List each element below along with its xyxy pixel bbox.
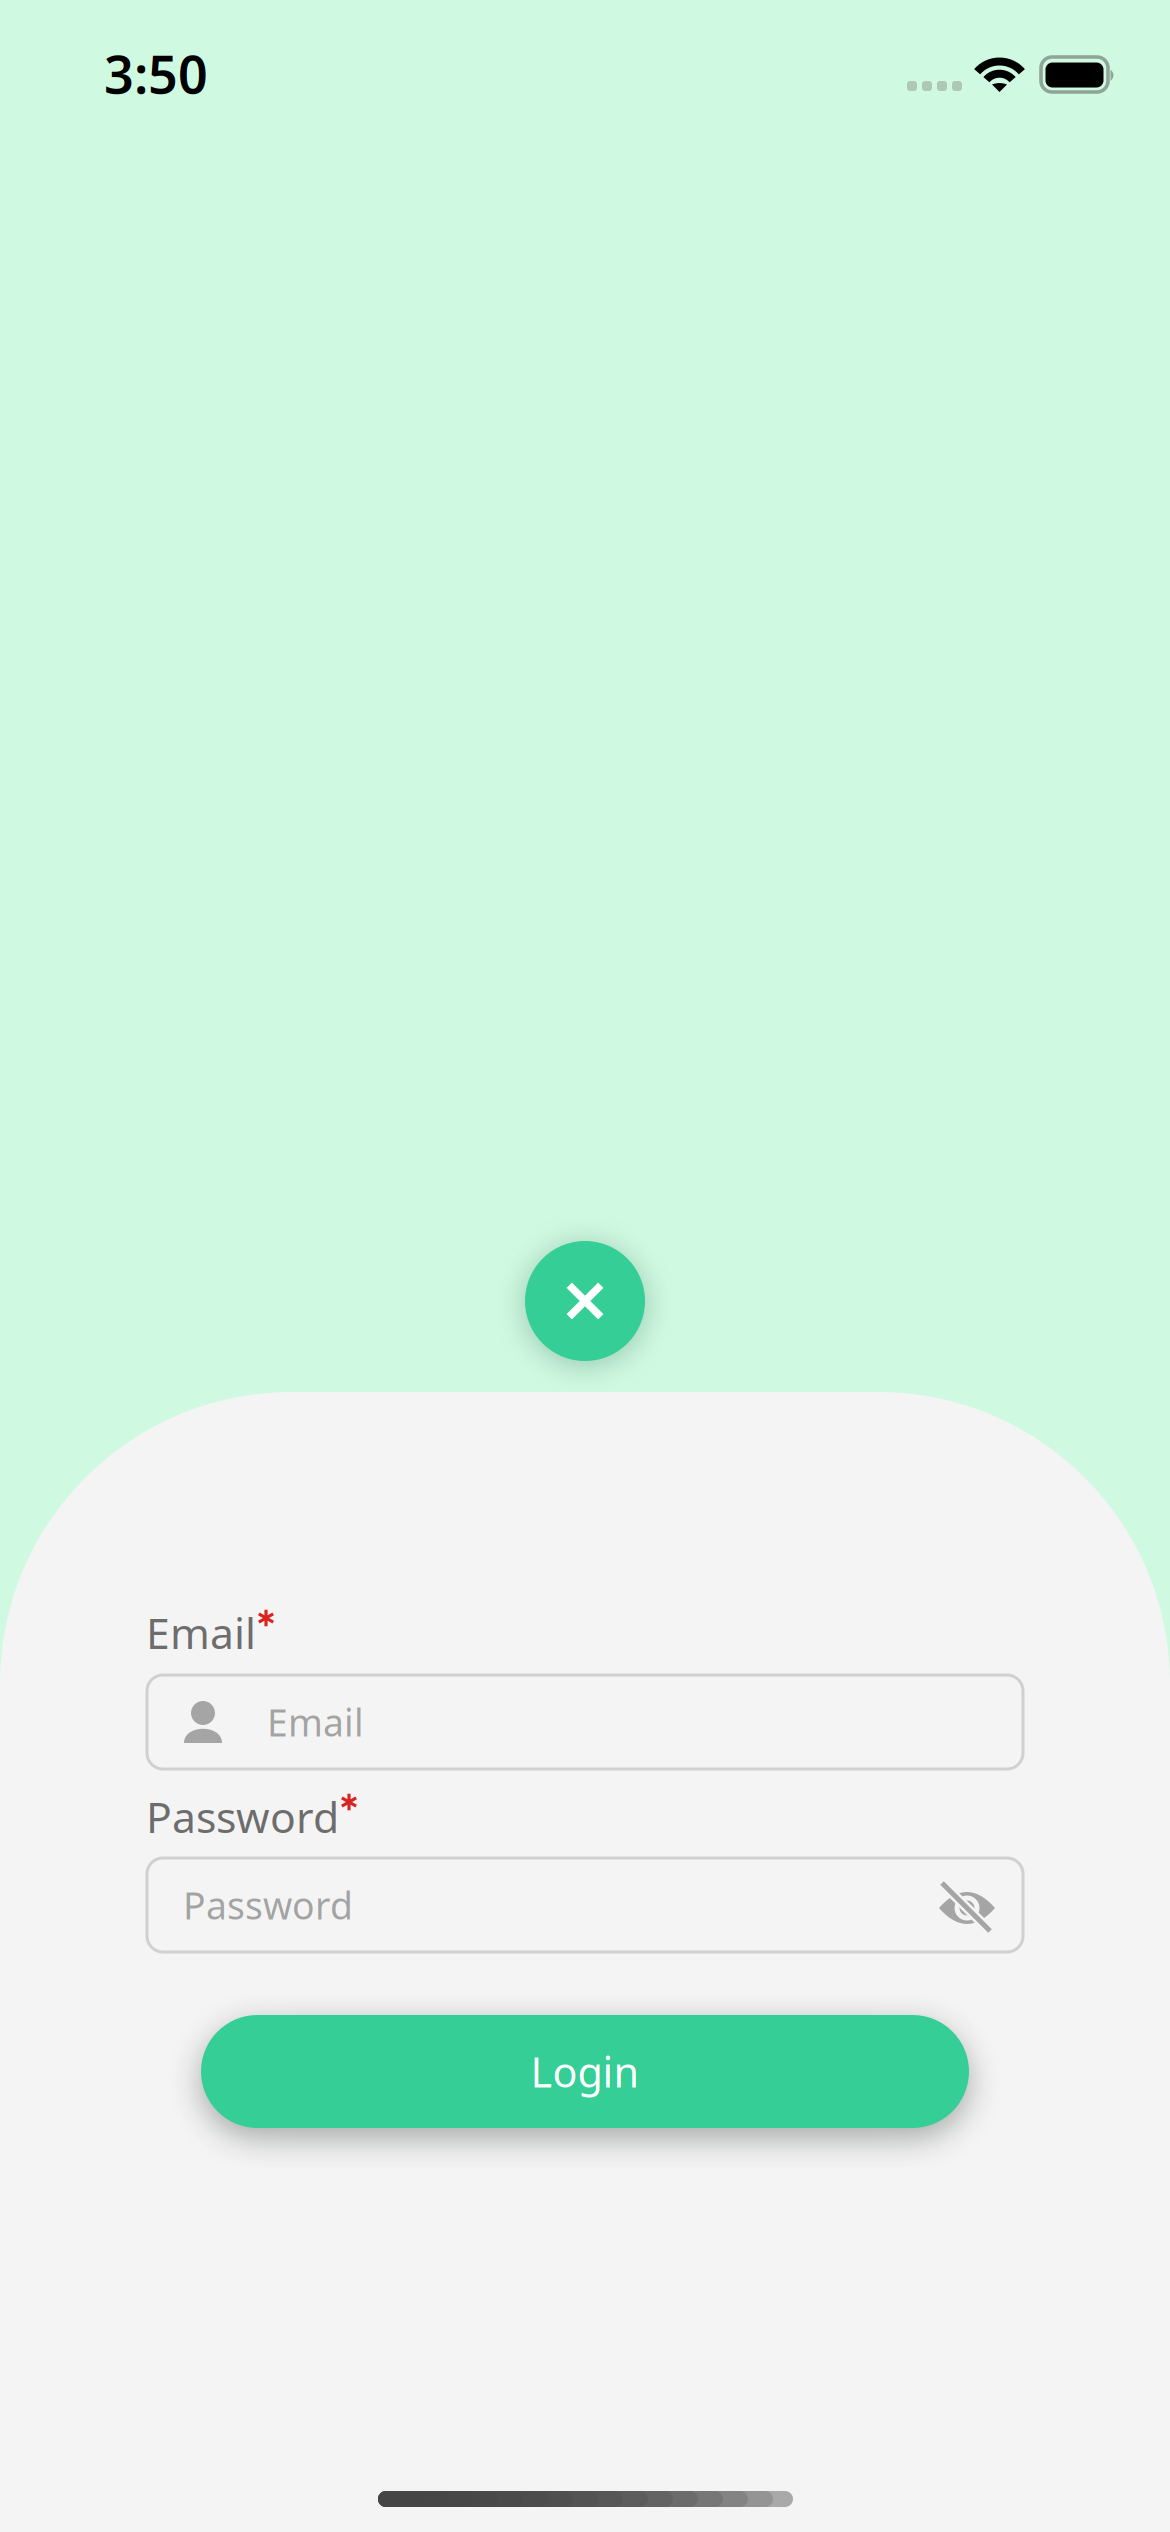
staticText: Login [530, 2044, 639, 2099]
staticText: Email [267, 1697, 364, 1747]
button[interactable]: Show password [938, 1877, 1023, 1933]
button[interactable]: Password [147, 1858, 1023, 1952]
button[interactable]: Login [201, 2015, 969, 2128]
button[interactable]: Email [147, 1675, 1023, 1769]
staticText: 3:50 [104, 39, 208, 108]
staticText: Password [146, 1788, 339, 1845]
staticText: Password [183, 1880, 353, 1930]
staticText: Email [146, 1604, 256, 1661]
button[interactable]: Close [525, 1241, 645, 1361]
